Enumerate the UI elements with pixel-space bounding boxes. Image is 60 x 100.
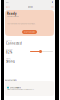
- staticText: BATTERY: [6, 49, 13, 51]
- staticText: Edit: [51, 6, 53, 8]
- staticText: Connected: [6, 42, 22, 45]
- staticText: Strong: [6, 60, 15, 63]
- staticText: Ready: [7, 12, 17, 15]
- staticText: Recent activity: [5, 79, 17, 81]
- staticText: Your device is charged and ready to go.: [7, 23, 35, 25]
- staticText: Sync complete: [10, 87, 21, 88]
- staticText: ‹ Back: [6, 6, 10, 8]
- staticText: ıll ▮: [52, 1, 53, 3]
- button[interactable]: Sync complete: [5, 81, 54, 96]
- staticText: Updated 2 min ago: [7, 15, 19, 17]
- staticText: STATUS: [6, 40, 12, 42]
- staticText: SIGNAL: [6, 58, 11, 60]
- button[interactable]: ‹ Back: [6, 6, 10, 8]
- staticText: Device: [28, 6, 33, 8]
- staticText: All files uploaded. Next backup in 6 hou…: [7, 89, 34, 90]
- staticText: 9:41: [6, 1, 9, 3]
- staticText: 82%: [6, 51, 12, 54]
- staticText: Start Session: [24, 31, 35, 33]
- button[interactable]: Edit: [51, 6, 53, 8]
- button[interactable]: Start Session: [22, 30, 37, 34]
